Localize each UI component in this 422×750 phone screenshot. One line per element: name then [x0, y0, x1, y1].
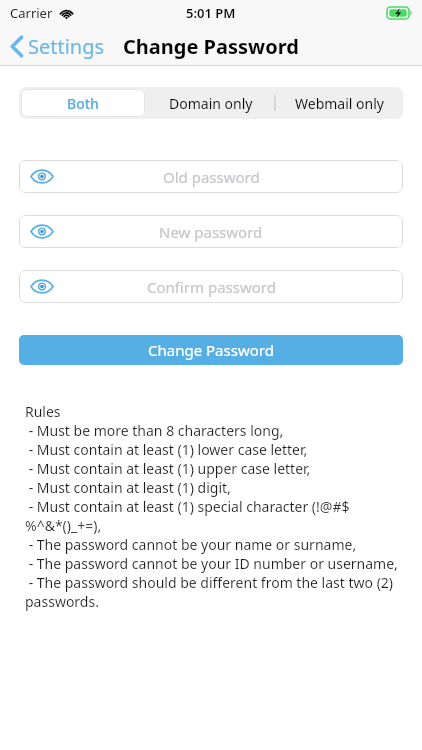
staticText: - The password cannot be your ID number …	[25, 554, 398, 573]
button[interactable]: Show Confirm password	[19, 270, 403, 303]
staticText: - Must contain at least (1) digit,	[25, 478, 231, 497]
staticText: - Must be more than 8 characters long,	[25, 421, 284, 440]
button[interactable]: Change Password	[19, 335, 403, 365]
button[interactable]: Show New password	[19, 215, 403, 248]
staticText: Rules	[25, 402, 61, 421]
button[interactable]: Webmail only	[275, 87, 403, 119]
staticText: Settings	[28, 33, 105, 60]
button[interactable]: Settings	[0, 29, 115, 64]
staticText: - Must contain at least (1) special char…	[25, 497, 408, 535]
staticText: Change Password	[123, 33, 299, 60]
staticText: - The password cannot be your name or su…	[25, 535, 357, 554]
button[interactable]: Show Old password	[30, 169, 54, 184]
button[interactable]: Show New password	[30, 224, 54, 239]
staticText: Domain only	[169, 94, 253, 113]
staticText: 5:01 PM	[186, 4, 236, 22]
staticText: - Must contain at least (1) lower case l…	[25, 440, 308, 459]
staticText: - The password should be different from …	[25, 573, 408, 611]
button[interactable]: Show Confirm password	[30, 279, 54, 294]
staticText: Old password	[163, 167, 260, 187]
staticText: Both	[67, 94, 99, 113]
button[interactable]: Show Old password	[19, 160, 403, 193]
staticText: Change Password	[148, 340, 274, 360]
staticText: New password	[159, 222, 263, 242]
staticText: Carrier	[10, 4, 53, 22]
button[interactable]: Domain only	[147, 87, 275, 119]
staticText: Webmail only	[295, 94, 384, 113]
staticText: - Must contain at least (1) upper case l…	[25, 459, 311, 478]
staticText: Confirm password	[147, 277, 276, 297]
button[interactable]: Both	[21, 89, 145, 117]
